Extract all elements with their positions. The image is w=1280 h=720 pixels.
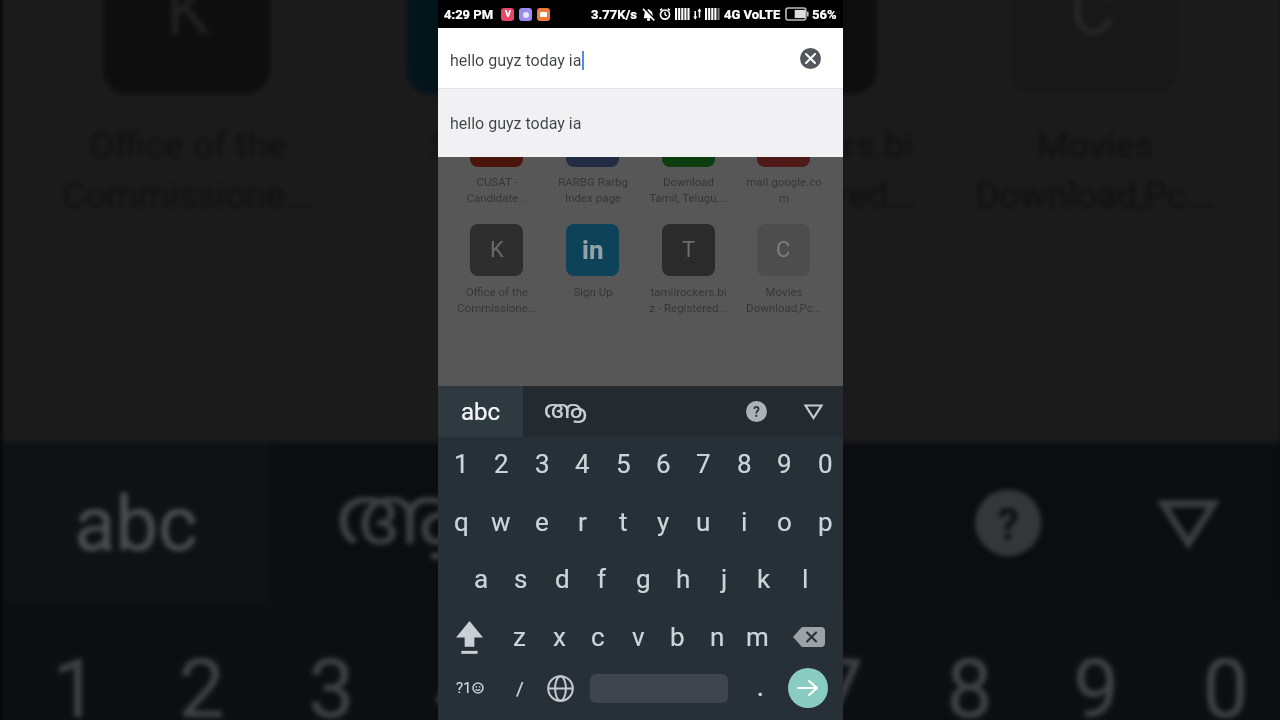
- staticText: 4G VoLTE: [724, 7, 781, 22]
- button[interactable]: T: [709, 0, 877, 95]
- button[interactable]: 2: [481, 436, 521, 492]
- button[interactable]: m: [737, 609, 777, 665]
- staticText: C: [776, 237, 791, 263]
- button[interactable]: [800, 48, 821, 69]
- button[interactable]: h: [663, 551, 703, 607]
- button[interactable]: z: [499, 609, 539, 665]
- staticText: 4: [435, 641, 482, 720]
- button[interactable]: 9: [1032, 600, 1158, 720]
- button[interactable]: K: [470, 224, 523, 276]
- staticText: hello guyz today ia: [450, 114, 582, 133]
- button[interactable]: hello guyz today ia: [438, 89, 843, 157]
- staticText: 2: [494, 449, 509, 479]
- button[interactable]: c: [578, 609, 618, 665]
- button[interactable]: [788, 668, 828, 708]
- staticText: 0: [1203, 641, 1250, 720]
- button[interactable]: w: [481, 494, 521, 550]
- staticText: s: [514, 564, 528, 594]
- button[interactable]: a: [461, 551, 501, 607]
- button[interactable]: x: [539, 609, 579, 665]
- button[interactable]: C: [757, 224, 810, 276]
- button[interactable]: [538, 657, 582, 719]
- staticText: abc: [461, 398, 501, 426]
- staticText: 5: [616, 449, 631, 479]
- button[interactable]: [801, 399, 826, 424]
- button[interactable]: b: [657, 609, 697, 665]
- button[interactable]: j: [704, 551, 744, 607]
- button[interactable]: [566, 157, 619, 167]
- button[interactable]: o: [764, 494, 804, 550]
- button[interactable]: ?: [746, 401, 767, 422]
- button[interactable]: .: [742, 657, 778, 719]
- staticText: d: [555, 564, 570, 594]
- button[interactable]: p: [805, 494, 845, 550]
- button[interactable]: ആ: [321, 442, 488, 603]
- button[interactable]: [1149, 483, 1228, 562]
- button[interactable]: ?: [975, 490, 1041, 556]
- button[interactable]: d: [542, 551, 582, 607]
- button[interactable]: q: [441, 494, 481, 550]
- button[interactable]: l: [785, 551, 825, 607]
- staticText: V: [505, 9, 511, 20]
- button[interactable]: n: [697, 609, 737, 665]
- button[interactable]: ആ: [539, 386, 592, 437]
- button[interactable]: 0: [805, 436, 845, 492]
- button[interactable]: s: [501, 551, 541, 607]
- button[interactable]: 2: [137, 600, 264, 720]
- button[interactable]: 4: [562, 436, 602, 492]
- button[interactable]: 1: [11, 600, 137, 720]
- staticText: .: [757, 674, 764, 702]
- button[interactable]: ?1: [443, 657, 497, 719]
- button[interactable]: r: [562, 494, 602, 550]
- button[interactable]: 8: [905, 600, 1032, 720]
- button[interactable]: 5: [603, 436, 643, 492]
- button[interactable]: 6: [649, 600, 776, 720]
- staticText: in: [457, 0, 526, 60]
- button[interactable]: v: [618, 609, 658, 665]
- button[interactable]: f: [582, 551, 622, 607]
- button[interactable]: 3: [267, 600, 393, 720]
- button[interactable]: e: [522, 494, 562, 550]
- button[interactable]: T: [662, 224, 715, 276]
- button[interactable]: K: [103, 0, 270, 95]
- staticText: T: [773, 0, 817, 53]
- button[interactable]: 0: [1161, 600, 1280, 720]
- button[interactable]: 5: [523, 600, 649, 720]
- button[interactable]: g: [623, 551, 663, 607]
- button[interactable]: 7: [683, 436, 723, 492]
- staticText: 3.77K/s: [591, 7, 637, 22]
- button[interactable]: 8: [724, 436, 764, 492]
- button[interactable]: u: [683, 494, 723, 550]
- button[interactable]: /: [500, 657, 540, 719]
- button[interactable]: i: [724, 494, 764, 550]
- button[interactable]: k: [744, 551, 784, 607]
- button[interactable]: in: [566, 224, 619, 276]
- staticText: 4:29 PM: [444, 7, 494, 22]
- button[interactable]: [757, 157, 810, 167]
- button[interactable]: 9: [764, 436, 804, 492]
- button[interactable]: 6: [643, 436, 683, 492]
- staticText: x: [553, 622, 566, 652]
- button[interactable]: 3: [522, 436, 562, 492]
- button[interactable]: 7: [776, 600, 902, 720]
- staticText: CUSAT - Candidate...: [466, 175, 528, 204]
- button[interactable]: 1: [441, 436, 481, 492]
- button[interactable]: [470, 157, 523, 167]
- staticText: z: [513, 622, 526, 652]
- staticText: 1: [52, 641, 99, 720]
- staticText: in: [582, 235, 604, 265]
- button[interactable]: hello guyz today ia: [438, 28, 843, 89]
- button[interactable]: y: [643, 494, 683, 550]
- button[interactable]: [662, 157, 715, 167]
- staticText: w: [491, 507, 511, 537]
- button[interactable]: [447, 609, 491, 665]
- button[interactable]: in: [406, 0, 574, 95]
- button[interactable]: abc: [2, 442, 270, 603]
- button[interactable]: t: [603, 494, 643, 550]
- button[interactable]: [785, 609, 833, 665]
- button[interactable]: abc: [438, 386, 523, 437]
- button[interactable]: 4: [393, 600, 520, 720]
